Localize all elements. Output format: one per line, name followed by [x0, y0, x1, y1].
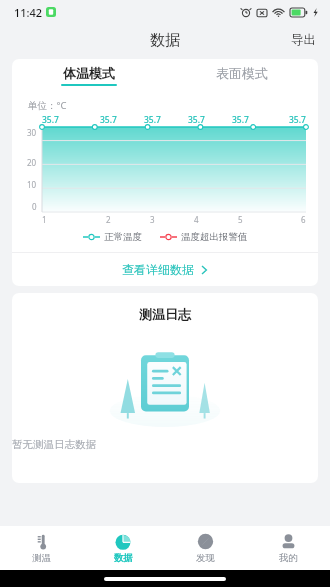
staticText: 数据 — [150, 31, 180, 50]
staticText: 体温模式 — [63, 65, 115, 81]
staticText: 温度超出报警值 — [181, 231, 248, 243]
button[interactable]: 我的 — [247, 526, 330, 570]
staticText: 6 — [301, 214, 306, 225]
staticText: 我的 — [279, 552, 298, 564]
staticText: 查看详细数据 — [122, 262, 194, 277]
staticText: 30 — [27, 127, 37, 138]
button[interactable]: 体温模式 — [12, 59, 165, 92]
staticText: 35.7 — [100, 114, 117, 126]
staticText: 发现 — [196, 552, 215, 564]
staticText: 3 — [150, 214, 155, 225]
staticText: 0 — [32, 201, 37, 212]
staticText: 35.7 — [289, 114, 306, 126]
button[interactable]: 表面模式 — [165, 59, 318, 92]
button[interactable]: 发现 — [164, 526, 247, 570]
staticText: 20 — [27, 157, 37, 168]
staticText: 2 — [106, 214, 111, 225]
button[interactable]: 导出 — [277, 26, 330, 54]
staticText: 单位：°C — [28, 99, 67, 112]
staticText: 1 — [42, 214, 47, 225]
staticText: 11:42 — [14, 5, 43, 20]
staticText: 5 — [238, 214, 243, 225]
staticText: 导出 — [291, 32, 316, 48]
button[interactable]: 数据 — [82, 526, 164, 570]
staticText: 4 — [194, 214, 199, 225]
staticText: 35.7 — [188, 114, 205, 126]
staticText: 正常温度 — [104, 231, 142, 243]
staticText: 35.7 — [144, 114, 161, 126]
staticText: 35.7 — [232, 114, 249, 126]
staticText: 测温 — [32, 552, 51, 564]
staticText: 35.7 — [42, 114, 59, 126]
button[interactable]: 查看详细数据 — [12, 253, 318, 286]
button[interactable]: 测温 — [0, 526, 82, 570]
staticText: 10 — [27, 179, 37, 190]
staticText: 暂无测温日志数据 — [12, 438, 318, 451]
staticText: 数据 — [114, 552, 133, 564]
staticText: 测温日志 — [139, 306, 191, 322]
staticText: 表面模式 — [216, 65, 268, 81]
